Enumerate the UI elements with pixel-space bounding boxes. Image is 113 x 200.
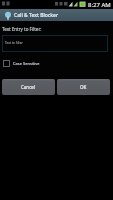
button[interactable]: App icon, navigate up — [2, 10, 13, 21]
staticText: Call & Text Blocker — [14, 12, 59, 19]
button[interactable]: Text to filter — [2, 35, 108, 52]
button[interactable]: OK — [57, 79, 110, 95]
staticText: Case Sensitive — [13, 61, 40, 66]
staticText: Text to filter — [5, 41, 23, 45]
staticText: Text Entry to Filter: — [2, 26, 42, 32]
button[interactable]: Cancel — [2, 79, 55, 95]
staticText: OK — [80, 84, 87, 90]
button[interactable]: Case Sensitive — [3, 60, 40, 67]
staticText: Cancel — [21, 84, 36, 90]
staticText: 8:27 AM — [88, 1, 111, 9]
